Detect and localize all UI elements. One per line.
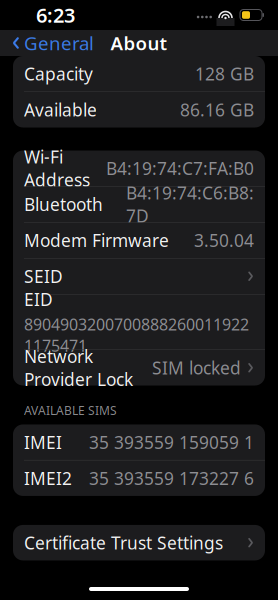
button[interactable]: Bluetooth [13, 186, 265, 222]
staticText: Modem Firmware [24, 229, 169, 252]
staticText: Wi-Fi Address [24, 145, 90, 191]
button[interactable]: EID [13, 294, 265, 349]
staticText: 35 393559 159059 1 [89, 431, 254, 454]
staticText: Capacity [24, 62, 93, 85]
button[interactable]: Available [13, 92, 265, 127]
staticText: General [24, 31, 94, 55]
staticText: About [110, 31, 167, 55]
staticText: 128 GB [195, 62, 254, 85]
staticText: Available [24, 98, 97, 121]
button[interactable]: Modem Firmware [13, 222, 265, 258]
button[interactable]: Wi-Fi Address [13, 150, 265, 186]
staticText: Certificate Trust Settings [24, 531, 223, 554]
staticText: 35 393559 173227 6 [89, 467, 254, 490]
button[interactable]: Network Provider Lock [13, 350, 265, 385]
staticText: 6:23 [36, 2, 75, 28]
button[interactable]: Capacity [13, 56, 265, 91]
staticText: B4:19:74:C7:FA:B0 [106, 157, 254, 180]
staticText: 86.16 GB [180, 98, 254, 121]
staticText: IMEI [24, 431, 62, 454]
staticText: SIM locked [152, 356, 241, 379]
button[interactable]: IMEI2 [13, 460, 265, 496]
staticText: 89049032007008882600119221175471 [24, 314, 249, 356]
staticText: IMEI2 [24, 467, 72, 490]
staticText: 3.50.04 [194, 229, 254, 252]
button[interactable]: SEID [13, 258, 265, 294]
staticText: Network Provider Lock [24, 345, 133, 391]
staticText: AVAILABLE SIMS [24, 402, 117, 418]
button[interactable]: IMEI [13, 424, 265, 460]
button[interactable]: Certificate Trust Settings [13, 525, 265, 560]
staticText: B4:19:74:C6:B8:7D [126, 181, 254, 227]
button[interactable]: General [4, 26, 102, 60]
staticText: SEID [24, 265, 63, 288]
staticText: EID [24, 288, 53, 311]
staticText: Bluetooth [24, 193, 103, 216]
